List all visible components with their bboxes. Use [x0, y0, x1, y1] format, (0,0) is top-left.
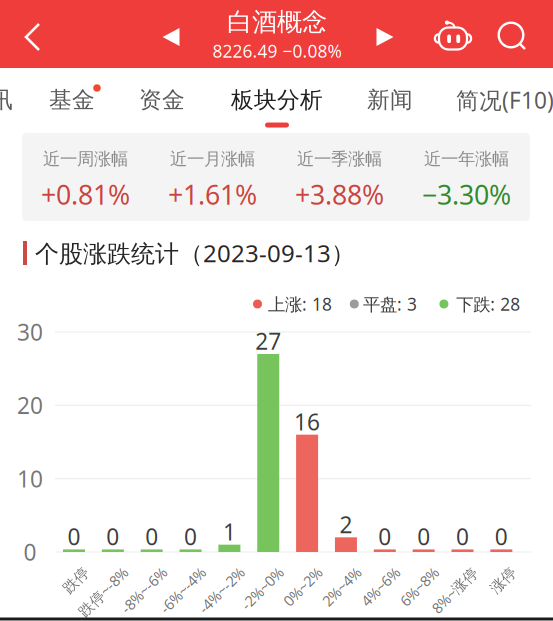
- button[interactable]: Previous sector: [147, 6, 195, 68]
- staticText: 0: [23, 537, 36, 567]
- staticText: 上涨: 18: [268, 292, 332, 315]
- staticText: 8%~涨停: [411, 562, 469, 582]
- staticText: 20: [17, 390, 43, 420]
- staticText: 涨停: [478, 563, 508, 581]
- staticText: 0: [184, 521, 197, 551]
- staticText: 2: [339, 509, 352, 539]
- staticText: 4%~6%: [344, 562, 392, 582]
- staticText: 0: [67, 521, 80, 551]
- staticText: 跌停~-8%: [57, 562, 120, 582]
- button[interactable]: 资讯: [0, 68, 18, 128]
- button[interactable]: Back: [3, 3, 61, 71]
- staticText: -4%~-2%: [178, 562, 236, 582]
- staticText: 平盘: 3: [363, 292, 417, 315]
- staticText: 0%~2%: [266, 562, 314, 582]
- staticText: 6%~8%: [383, 562, 431, 582]
- staticText: 27: [255, 326, 281, 356]
- staticText: 0: [456, 521, 469, 551]
- staticText: 10: [17, 464, 43, 494]
- button[interactable]: 资金: [134, 68, 190, 128]
- staticText: −3.30%: [422, 177, 511, 212]
- staticText: -6%~-4%: [140, 562, 198, 582]
- staticText: +1.61%: [168, 177, 257, 212]
- staticText: 基金: [49, 86, 95, 114]
- staticText: 资金: [139, 86, 185, 114]
- staticText: 资讯: [0, 86, 13, 114]
- staticText: -8%~-6%: [101, 562, 159, 582]
- button[interactable]: Next sector: [361, 6, 409, 68]
- staticText: 下跌: 28: [456, 292, 520, 315]
- staticText: 板块分析: [231, 86, 323, 114]
- staticText: +3.88%: [295, 177, 384, 212]
- staticText: 0: [417, 521, 430, 551]
- button[interactable]: AI assistant: [426, 2, 480, 70]
- staticText: 新闻: [367, 86, 413, 114]
- staticText: 简况(F10): [456, 85, 553, 115]
- staticText: 近一季涨幅: [297, 148, 382, 170]
- staticText: 0: [106, 521, 119, 551]
- staticText: 1: [223, 517, 236, 547]
- staticText: 白酒概念: [227, 6, 327, 37]
- button[interactable]: 简况(F10): [453, 68, 553, 128]
- button[interactable]: 新闻: [362, 68, 418, 128]
- staticText: 0: [495, 521, 508, 551]
- button[interactable]: 基金: [44, 68, 100, 128]
- staticText: 0: [145, 521, 158, 551]
- staticText: -2%~0%: [222, 562, 275, 582]
- staticText: 个股涨跌统计（2023-09-13）: [35, 237, 355, 269]
- staticText: 2%~4%: [305, 562, 353, 582]
- staticText: 16: [294, 407, 320, 437]
- staticText: 0: [378, 521, 391, 551]
- staticText: +0.81%: [41, 177, 130, 212]
- staticText: 近一月涨幅: [170, 148, 255, 170]
- staticText: 30: [17, 317, 43, 347]
- button[interactable]: 板块分析: [227, 68, 327, 128]
- staticText: 近一年涨幅: [424, 148, 509, 170]
- staticText: 近一周涨幅: [43, 148, 128, 170]
- button[interactable]: Search: [485, 2, 539, 70]
- staticText: 8226.49 −0.08%: [212, 39, 341, 62]
- staticText: 跌停: [51, 563, 81, 581]
